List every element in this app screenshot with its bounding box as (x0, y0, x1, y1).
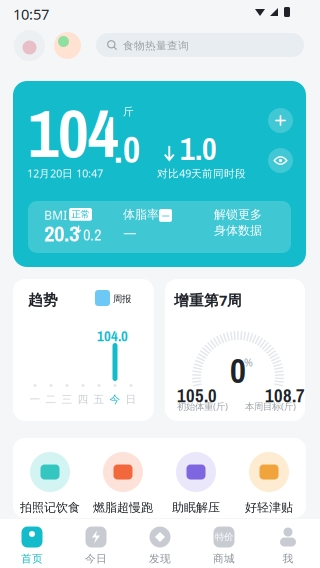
staticText: 今日 (85, 552, 107, 565)
staticText: 正常 (71, 208, 89, 220)
button[interactable]: 好轻津贴 (232, 438, 305, 518)
staticText: 斤 (123, 105, 134, 118)
staticText: 0 (230, 347, 246, 394)
staticText: 增重第7周 (174, 290, 242, 310)
staticText: 10:57 (13, 4, 49, 24)
staticText: 发现 (149, 552, 171, 565)
button[interactable]: BMI (28, 201, 291, 253)
staticText: 初始体重(斤) (177, 400, 228, 413)
staticText: 周报 (113, 293, 131, 305)
button[interactable]: 今日 (64, 519, 128, 568)
staticText: 0.2 (83, 224, 101, 246)
button[interactable]: 特价 (192, 519, 256, 568)
staticText: 解锁更多 (214, 207, 262, 222)
button[interactable]: 拍照记饮食 (13, 438, 86, 518)
staticText: 一 (29, 393, 40, 406)
staticText: 今 (109, 393, 120, 406)
button[interactable]: 活动入口 (54, 32, 81, 59)
button[interactable]: 燃脂超慢跑 (86, 438, 159, 518)
staticText: 身体数据 (214, 223, 262, 238)
staticText: 拍照记饮食 (20, 500, 80, 515)
staticText: 商城 (213, 552, 235, 565)
staticText: 1.0 (180, 127, 217, 170)
button[interactable]: 我 (256, 519, 320, 568)
staticText: 助眠解压 (172, 500, 220, 515)
staticText: 二 (45, 393, 56, 406)
staticText: 好轻津贴 (245, 500, 293, 515)
staticText: 20.3 (44, 218, 79, 248)
button[interactable]: 食物热量查询 (96, 33, 304, 57)
staticText: 燃脂超慢跑 (93, 500, 153, 515)
button[interactable]: 趋势 (13, 279, 154, 421)
staticText: % (244, 355, 253, 369)
staticText: 104 (28, 88, 118, 178)
staticText: 104.0 (97, 326, 128, 346)
staticText: 105.0 (177, 383, 217, 408)
staticText: 五 (93, 393, 104, 406)
button[interactable]: 添加记录 (268, 108, 293, 133)
staticText: 首页 (21, 552, 43, 565)
staticText: 特价 (215, 531, 233, 543)
button[interactable]: 首页 (0, 519, 64, 568)
staticText: 12月20日 10:47 (27, 166, 103, 180)
button[interactable]: 显示数据 (268, 148, 293, 173)
staticText: 体脂率 (123, 207, 159, 222)
staticText: 四 (77, 393, 88, 406)
staticText: — (123, 223, 136, 241)
staticText: 食物热量查询 (123, 39, 189, 52)
staticText: 日 (125, 393, 136, 406)
staticText: BMI (44, 207, 67, 223)
button[interactable]: 发现 (128, 519, 192, 568)
staticText: 108.7 (265, 383, 305, 408)
button[interactable]: 增重第7周 (165, 279, 305, 421)
button[interactable]: 个人头像 (14, 30, 45, 61)
staticText: 趋势 (28, 291, 58, 309)
button[interactable]: 助眠解压 (159, 438, 232, 518)
staticText: 三 (61, 393, 72, 406)
staticText: — (161, 210, 169, 221)
staticText: 对比49天前同时段 (157, 166, 246, 180)
staticText: 我 (282, 552, 293, 565)
staticText: .0 (114, 124, 140, 174)
staticText: 本周目标(斤) (245, 400, 296, 413)
